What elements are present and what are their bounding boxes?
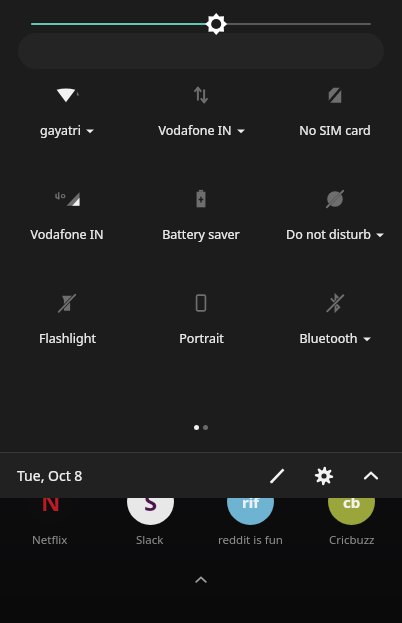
button[interactable]: Brightness — [0, 12, 402, 36]
button[interactable]: Vodafone IN — [134, 82, 268, 139]
button[interactable]: Collapse — [356, 461, 385, 490]
staticText: Portrait — [179, 330, 224, 347]
button[interactable]: Open app drawer — [188, 567, 214, 593]
staticText: cb — [343, 492, 361, 512]
button[interactable]: Flashlight — [0, 290, 134, 347]
button[interactable]: Edit tiles — [262, 461, 291, 490]
button[interactable]: Do not disturb — [268, 186, 402, 243]
staticText: rif — [242, 492, 259, 512]
button[interactable]: No SIM card — [268, 82, 402, 139]
button[interactable]: rif — [200, 478, 301, 548]
staticText: Flashlight — [39, 330, 96, 347]
button[interactable]: Bluetooth — [268, 290, 402, 347]
staticText: Vodafone IN — [30, 226, 104, 243]
staticText: Do not disturb — [286, 226, 371, 243]
button[interactable]: S — [100, 478, 200, 548]
staticText: Netflix — [32, 532, 68, 548]
button[interactable]: cb — [301, 478, 402, 548]
staticText: Bluetooth — [299, 330, 358, 347]
staticText: reddit is fun — [218, 532, 283, 548]
button[interactable]: Portrait — [134, 290, 268, 347]
staticText: Slack — [136, 532, 164, 548]
staticText: gayatri — [40, 122, 81, 139]
staticText: S — [144, 485, 158, 518]
button[interactable]: gayatri — [0, 82, 134, 139]
staticText: Cricbuzz — [329, 532, 375, 548]
staticText: No SIM card — [299, 122, 371, 139]
staticText: Vodafone IN — [158, 122, 232, 139]
button[interactable]: N — [0, 478, 100, 548]
staticText: Battery saver — [162, 226, 240, 243]
staticText: Tue, Oct 8 — [17, 466, 83, 485]
staticText: N — [41, 485, 61, 518]
button[interactable]: Vodafone IN — [0, 186, 134, 243]
button[interactable]: Battery saver — [134, 186, 268, 243]
button[interactable]: Settings — [309, 461, 338, 490]
